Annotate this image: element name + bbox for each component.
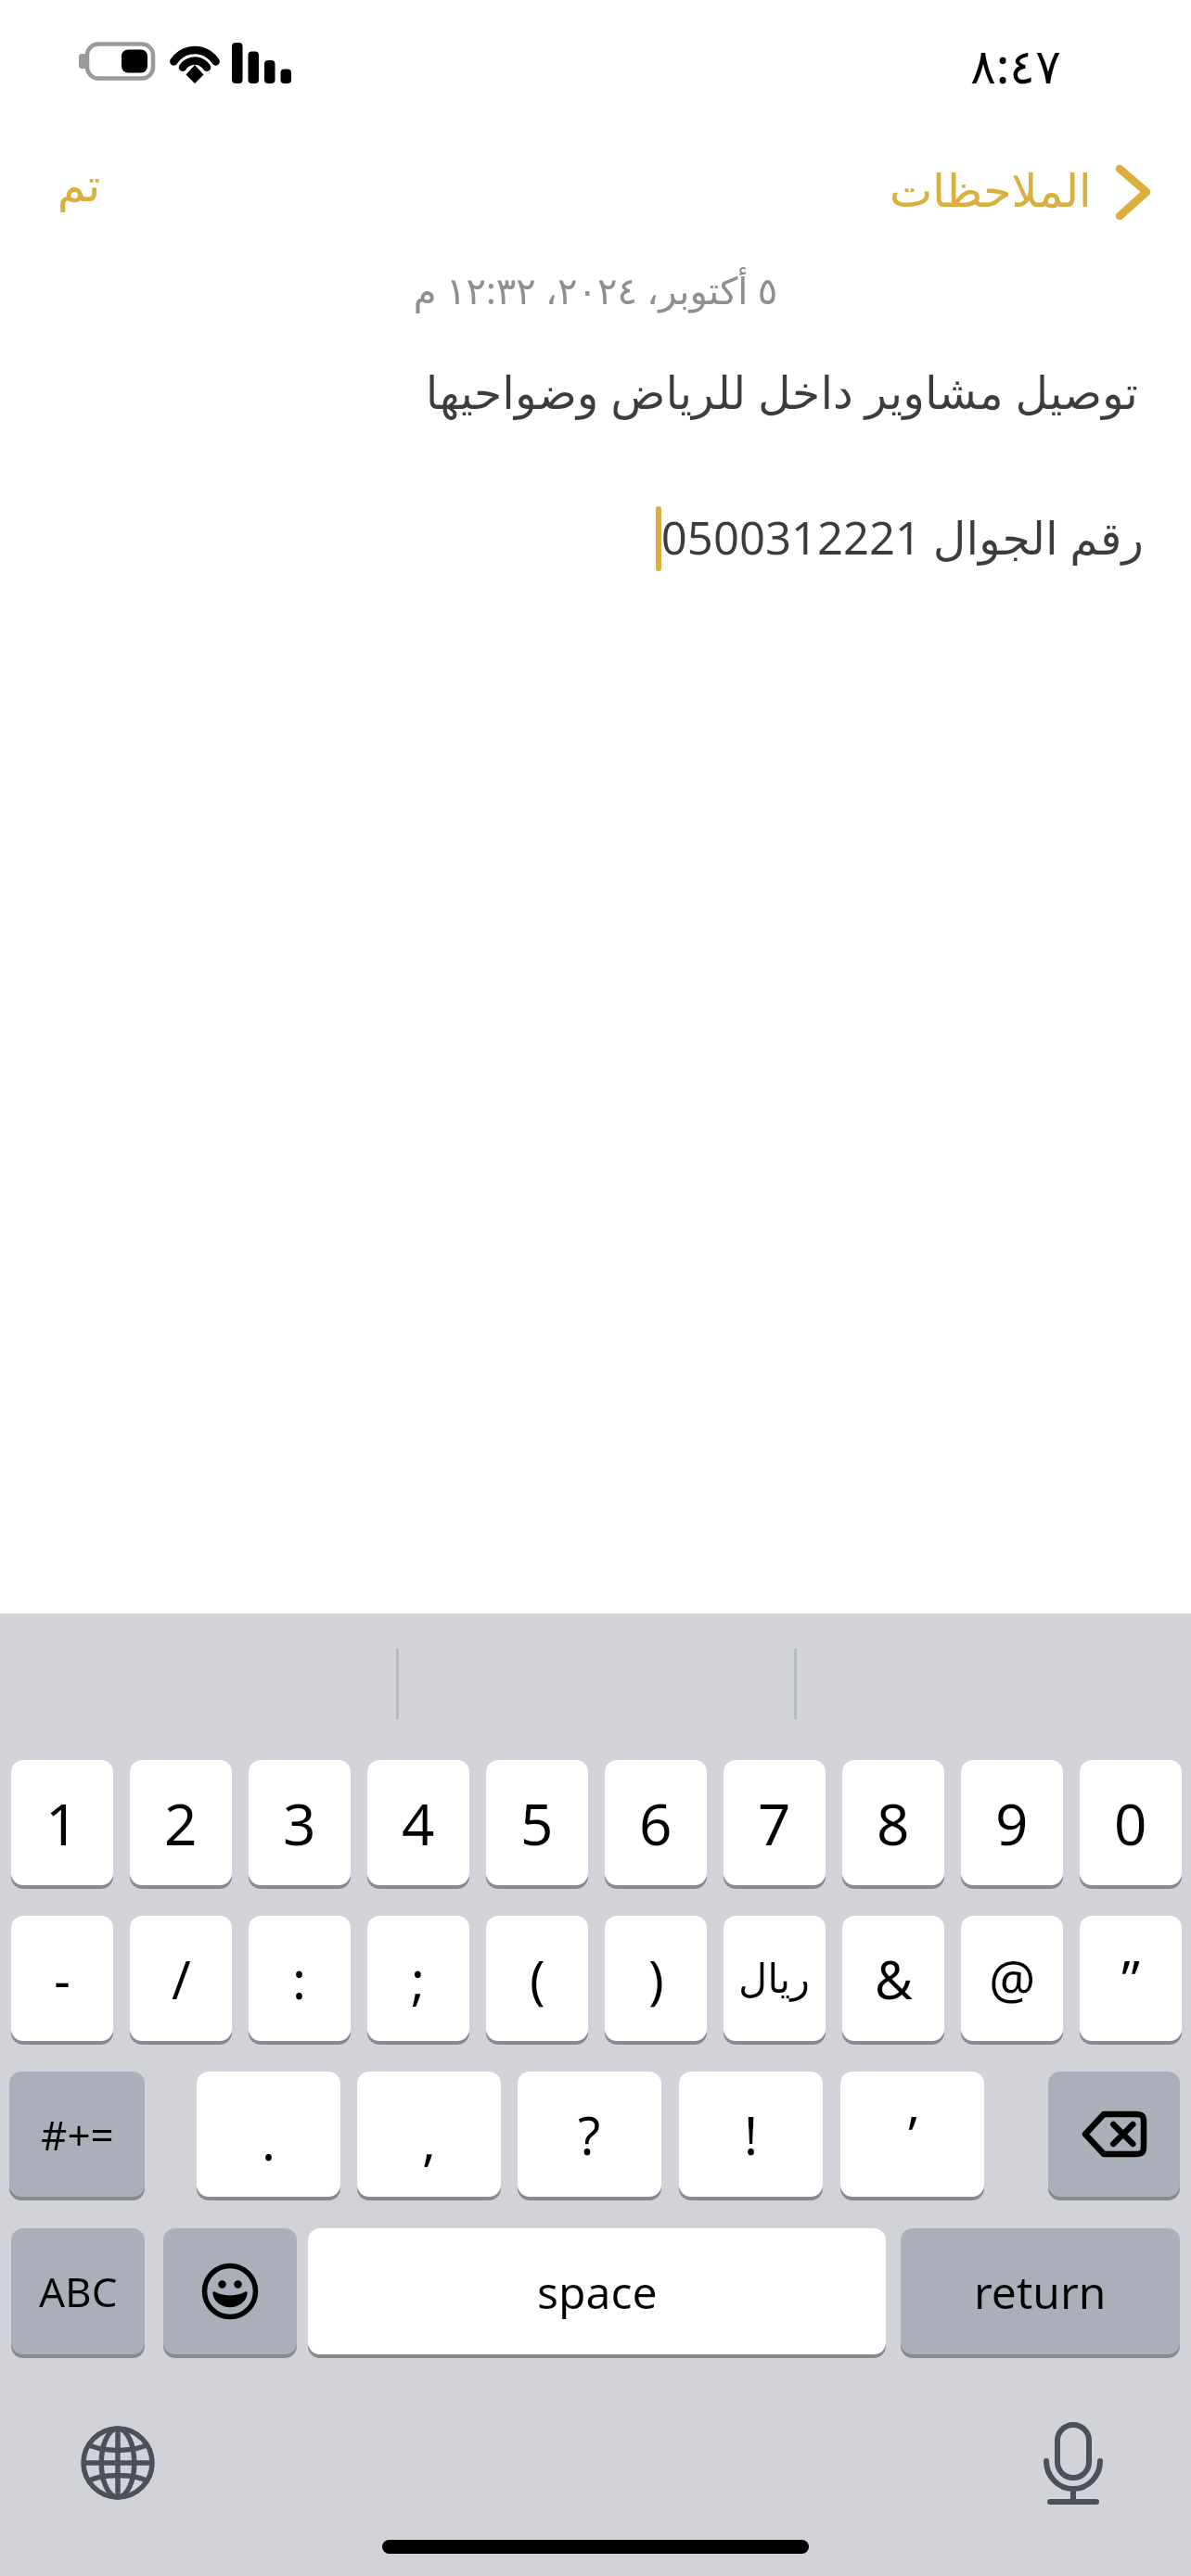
button[interactable]: رجوع	[1102, 150, 1191, 232]
button[interactable]: ,	[357, 2072, 501, 2197]
button[interactable]: -	[11, 1916, 113, 2041]
staticText: @	[989, 1944, 1036, 2014]
button[interactable]: ;	[367, 1916, 469, 2041]
button[interactable]: نص الملاحظة	[0, 241, 1191, 1613]
staticText: ٥ أكتوبر، ٢٠٢٤، ١٢:٣٢ م	[0, 264, 1191, 314]
button[interactable]: 0	[1080, 1760, 1182, 1885]
staticText: )	[648, 1944, 664, 2014]
button[interactable]: ”	[1080, 1916, 1182, 2041]
button[interactable]: space	[308, 2228, 886, 2354]
button[interactable]: الملاحظات	[881, 148, 1099, 234]
staticText: 1	[45, 1784, 79, 1862]
button[interactable]: )	[605, 1916, 707, 2041]
staticText: #+=	[41, 2107, 114, 2162]
button[interactable]: ABC	[11, 2228, 145, 2354]
staticText: ”	[1121, 1944, 1141, 2014]
staticText: ريال	[738, 1956, 811, 2002]
button[interactable]: 4	[367, 1760, 469, 1885]
button[interactable]: (	[486, 1916, 588, 2041]
button[interactable]: ريال	[724, 1916, 826, 2041]
staticText: ’	[908, 2099, 917, 2170]
button[interactable]: 3	[249, 1760, 351, 1885]
staticText: 9	[995, 1784, 1029, 1862]
staticText: 4	[402, 1784, 435, 1862]
button[interactable]: 1	[11, 1760, 113, 1885]
button[interactable]: تغيير لغة لوحة المفاتيح	[81, 2426, 155, 2500]
staticText: (	[530, 1944, 545, 2014]
button[interactable]: 7	[724, 1760, 826, 1885]
button[interactable]: /	[130, 1916, 232, 2041]
button[interactable]: @	[961, 1916, 1063, 2041]
staticText: 0	[1114, 1784, 1147, 1862]
staticText: space	[537, 2262, 658, 2322]
button[interactable]: ’	[840, 2072, 984, 2197]
staticText: ABC	[39, 2264, 118, 2319]
staticText: ,	[422, 2105, 437, 2175]
staticText: رقم الجوال 0500312221	[0, 506, 1144, 568]
staticText: ٨:٤٧	[970, 32, 1061, 97]
button[interactable]: #+=	[9, 2072, 145, 2197]
button[interactable]: return	[901, 2228, 1180, 2354]
button[interactable]: رموز تعبيرية	[163, 2228, 297, 2354]
button[interactable]: 5	[486, 1760, 588, 1885]
staticText: 5	[520, 1784, 554, 1862]
staticText: 3	[283, 1784, 316, 1862]
staticText: /	[172, 1944, 191, 2014]
staticText: return	[974, 2262, 1107, 2322]
staticText: .	[262, 2105, 276, 2175]
staticText: ?	[578, 2099, 601, 2170]
button[interactable]: 8	[842, 1760, 944, 1885]
button[interactable]: إملاء	[1036, 2421, 1110, 2506]
button[interactable]: !	[679, 2072, 823, 2197]
staticText: 7	[758, 1784, 791, 1862]
button[interactable]: &	[842, 1916, 944, 2041]
button[interactable]: 9	[961, 1760, 1063, 1885]
button[interactable]: 2	[130, 1760, 232, 1885]
staticText: &	[875, 1944, 913, 2014]
button[interactable]: مسح	[1048, 2072, 1180, 2197]
button[interactable]: :	[249, 1916, 351, 2041]
button[interactable]: 6	[605, 1760, 707, 1885]
staticText: !	[744, 2099, 759, 2170]
button[interactable]: تم	[23, 143, 134, 228]
staticText: 8	[877, 1784, 910, 1862]
staticText: تم	[58, 159, 101, 212]
staticText: -	[54, 1944, 71, 2014]
staticText: توصيل مشاوير داخل للرياض وضواحيها	[0, 361, 1138, 423]
button[interactable]: .	[197, 2072, 340, 2197]
staticText: 2	[164, 1784, 198, 1862]
staticText: الملاحظات	[890, 165, 1092, 218]
button[interactable]: ?	[518, 2072, 661, 2197]
staticText: 6	[639, 1784, 672, 1862]
staticText: ;	[411, 1944, 426, 2014]
staticText: :	[292, 1944, 307, 2014]
